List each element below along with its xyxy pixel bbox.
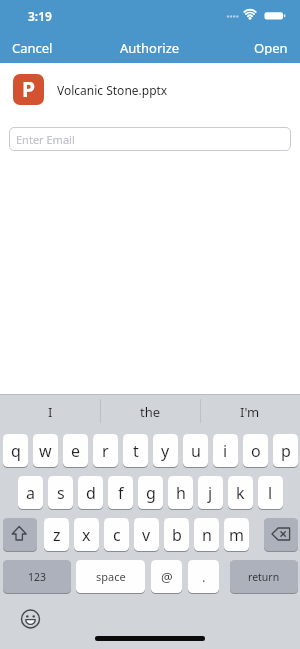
staticText: x <box>82 524 91 546</box>
button[interactable]: n <box>194 518 219 551</box>
staticText: 3:19 <box>28 8 52 24</box>
button[interactable]: p <box>273 434 298 467</box>
button[interactable]: Enter Email <box>9 127 291 151</box>
button[interactable] <box>264 518 298 551</box>
button[interactable]: Cancel <box>0 38 65 56</box>
staticText: Open <box>254 39 288 55</box>
staticText: I'm <box>240 403 260 421</box>
staticText: m <box>229 524 244 546</box>
button[interactable] <box>3 518 37 551</box>
staticText: Volcanic Stone.pptx <box>57 82 168 98</box>
button[interactable]: b <box>164 518 189 551</box>
staticText: return <box>248 570 280 584</box>
button[interactable]: a <box>18 476 43 509</box>
staticText: Cancel <box>12 39 53 55</box>
staticText: o <box>251 440 261 462</box>
staticText: y <box>161 440 170 462</box>
button[interactable]: d <box>78 476 103 509</box>
button[interactable]: h <box>168 476 193 509</box>
button[interactable]: j <box>198 476 223 509</box>
staticText: z <box>53 524 61 546</box>
staticText: f <box>118 482 124 504</box>
staticText: u <box>191 440 201 462</box>
staticText: s <box>57 482 65 504</box>
staticText: g <box>146 482 156 504</box>
button[interactable]: u <box>183 434 208 467</box>
staticText: . <box>202 568 206 586</box>
button[interactable] <box>16 604 46 630</box>
button[interactable]: Authorize <box>114 38 186 56</box>
button[interactable]: w <box>33 434 58 467</box>
button[interactable]: I <box>0 397 100 427</box>
button[interactable]: c <box>104 518 129 551</box>
staticText: e <box>71 440 81 462</box>
staticText: i <box>223 440 228 462</box>
button[interactable]: return <box>230 560 298 593</box>
staticText: q <box>11 440 21 462</box>
staticText: v <box>142 524 151 546</box>
staticText: c <box>113 524 121 546</box>
staticText: k <box>236 482 245 504</box>
button[interactable]: m <box>224 518 249 551</box>
button[interactable]: 123 <box>3 560 71 593</box>
button[interactable]: q <box>3 434 28 467</box>
staticText: a <box>26 482 35 504</box>
staticText: b <box>172 524 182 546</box>
button[interactable]: y <box>153 434 178 467</box>
button[interactable]: . <box>188 560 219 593</box>
button[interactable]: Open <box>242 38 300 56</box>
staticText: the <box>140 403 161 421</box>
button[interactable]: t <box>123 434 148 467</box>
button[interactable]: @ <box>151 560 182 593</box>
button[interactable]: s <box>48 476 73 509</box>
button[interactable]: k <box>228 476 253 509</box>
button[interactable]: g <box>138 476 163 509</box>
staticText: h <box>176 482 186 504</box>
button[interactable]: i <box>213 434 238 467</box>
button[interactable]: l <box>258 476 283 509</box>
button[interactable]: I'm <box>200 397 300 427</box>
staticText: n <box>202 524 212 546</box>
staticText: Authorize <box>120 39 180 55</box>
staticText: Enter Email <box>16 132 75 147</box>
staticText: I <box>48 403 53 421</box>
staticText: space <box>96 569 126 584</box>
staticText: r <box>102 440 109 462</box>
button[interactable]: P <box>13 74 288 105</box>
staticText: j <box>208 482 213 504</box>
staticText: w <box>39 440 52 462</box>
staticText: t <box>133 440 139 462</box>
staticText: P <box>22 75 36 104</box>
button[interactable]: x <box>74 518 99 551</box>
button[interactable]: space <box>76 560 145 593</box>
button[interactable]: r <box>93 434 118 467</box>
staticText: p <box>281 440 291 462</box>
button[interactable]: the <box>100 397 200 427</box>
staticText: d <box>86 482 96 504</box>
button[interactable]: f <box>108 476 133 509</box>
button[interactable]: v <box>134 518 159 551</box>
button[interactable]: z <box>44 518 69 551</box>
button[interactable]: e <box>63 434 88 467</box>
button[interactable]: o <box>243 434 268 467</box>
staticText: 123 <box>28 570 47 584</box>
staticText: @ <box>161 568 173 586</box>
staticText: l <box>268 482 273 504</box>
